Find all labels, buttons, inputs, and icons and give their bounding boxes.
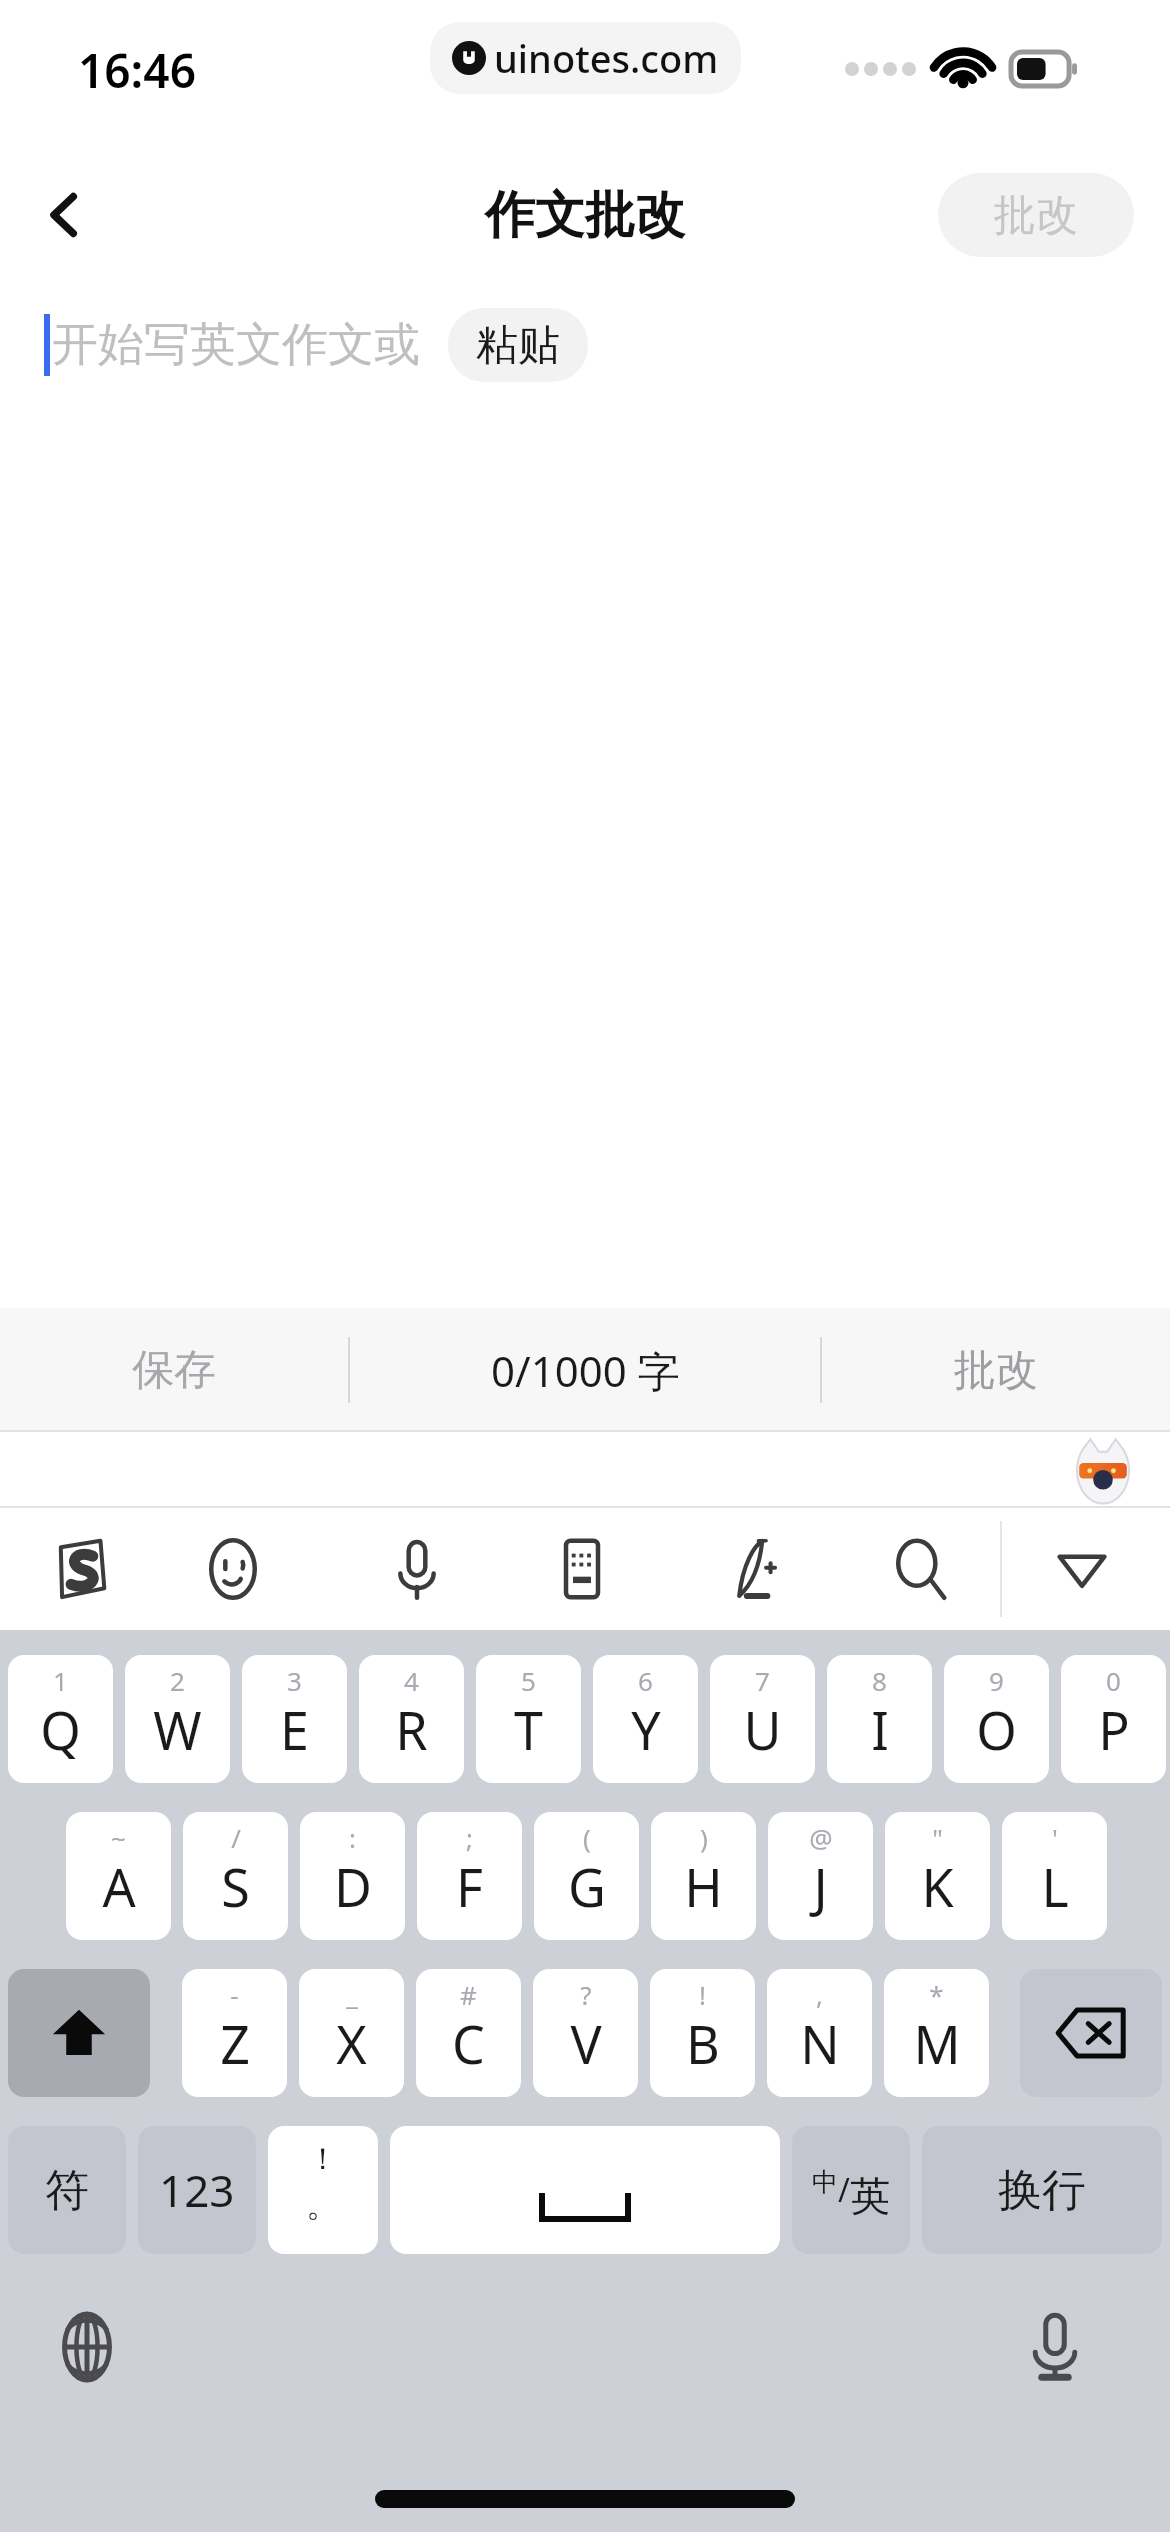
staticText: ' [1052,1820,1058,1855]
button[interactable]: ? [533,1969,638,2097]
staticText: # [460,1977,477,2012]
button[interactable]: ; [417,1812,522,1940]
staticText: Q [40,1694,81,1765]
staticText: * [929,1977,944,2012]
staticText: U [743,1694,782,1765]
staticText: _ [346,1977,358,2012]
button[interactable]: * [884,1969,989,2097]
staticText: 3 [287,1663,302,1698]
staticText: X [336,2008,367,2079]
button[interactable]: / [183,1812,288,1940]
staticText: 0/1000 字 [491,1342,680,1399]
button[interactable]: Voice input [1000,2292,1110,2402]
staticText: 换行 [998,2163,1086,2218]
staticText: T [514,1694,543,1765]
button[interactable]: Hide keyboard [1030,1517,1134,1621]
staticText: L [1041,1851,1069,1922]
button[interactable]: Space [390,2126,780,2254]
staticText: 批改 [954,1344,1038,1397]
staticText: - [230,1977,239,2012]
staticText: , [816,1977,823,2012]
button[interactable]: ) [651,1812,756,1940]
button[interactable]: 4 [359,1655,464,1783]
staticText: 9 [989,1663,1004,1698]
button[interactable]: Sogou [28,1508,132,1630]
button[interactable]: 批改 [938,173,1134,257]
staticText: " [932,1820,943,1855]
staticText: ！ [308,2140,338,2178]
staticText: ! [699,1977,706,2012]
button[interactable]: - [182,1969,287,2097]
button[interactable]: ！ [268,2126,378,2254]
staticText: : [349,1820,356,1855]
staticText: 2 [170,1663,185,1698]
staticText: / [838,2168,850,2212]
staticText: 1 [53,1663,68,1698]
button[interactable]: Emoji [181,1508,285,1630]
staticText: E [280,1694,309,1765]
staticText: 7 [755,1663,770,1698]
button[interactable]: Chinese English toggle [792,2126,910,2254]
staticText: C [452,2008,485,2079]
button[interactable]: @ [768,1812,873,1940]
button[interactable]: Handwriting [700,1508,804,1630]
button[interactable]: " [885,1812,990,1940]
button[interactable]: ~ [66,1812,171,1940]
staticText: 8 [872,1663,887,1698]
staticText: 6 [638,1663,653,1698]
button[interactable]: 0 [1061,1655,1166,1783]
button[interactable]: 7 [710,1655,815,1783]
staticText: S [221,1851,250,1922]
staticText: 中 [812,2166,838,2199]
button[interactable]: Sogou assistant [1068,1435,1138,1505]
button[interactable]: 8 [827,1655,932,1783]
button[interactable]: Switch language [32,2292,142,2402]
button[interactable]: 符 [8,2126,126,2254]
button[interactable]: _ [299,1969,404,2097]
button[interactable]: Backspace [1020,1969,1162,2097]
staticText: K [921,1851,954,1922]
staticText: @ [809,1820,833,1855]
staticText: 批改 [994,189,1078,242]
button[interactable]: Voice input [365,1508,469,1630]
button[interactable]: Shift [8,1969,150,2097]
button[interactable]: 6 [593,1655,698,1783]
staticText: uinotes.com [494,32,719,84]
staticText: ~ [111,1820,126,1855]
button[interactable]: 9 [944,1655,1049,1783]
staticText: O [976,1694,1017,1765]
staticText: 5 [521,1663,536,1698]
staticText: G [568,1851,606,1922]
staticText: V [570,2008,602,2079]
button[interactable]: ( [534,1812,639,1940]
staticText: 作文批改 [485,184,685,247]
staticText: R [395,1694,428,1765]
staticText: A [102,1851,136,1922]
staticText: 保存 [132,1344,216,1397]
button[interactable]: 换行 [922,2126,1162,2254]
staticText: ) [700,1820,708,1855]
button[interactable]: 1 [8,1655,113,1783]
staticText: F [456,1851,483,1922]
button[interactable]: 123 [138,2126,256,2254]
button[interactable]: ' [1002,1812,1107,1940]
staticText: D [334,1851,372,1922]
button[interactable]: 保存 [0,1308,348,1432]
button[interactable]: Back [20,170,110,260]
button[interactable]: 批改 [822,1308,1170,1432]
button[interactable]: , [767,1969,872,2097]
button[interactable]: # [416,1969,521,2097]
button[interactable]: Search [868,1508,972,1630]
staticText: 英 [850,2171,890,2221]
staticText: ( [583,1820,591,1855]
button[interactable]: ! [650,1969,755,2097]
button[interactable]: 5 [476,1655,581,1783]
staticText: 。 [306,2183,340,2226]
button[interactable]: 粘贴 [448,308,588,382]
button[interactable]: : [300,1812,405,1940]
button[interactable]: Keyboard layout [530,1508,634,1630]
staticText: N [800,2008,840,2079]
staticText: M [913,2008,961,2079]
button[interactable]: 2 [125,1655,230,1783]
button[interactable]: 3 [242,1655,347,1783]
